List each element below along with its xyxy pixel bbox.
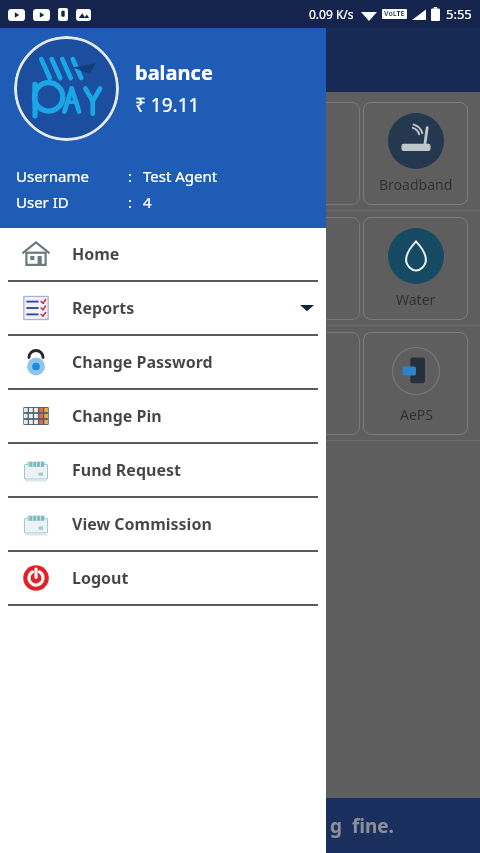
staticText: Logout [72, 567, 129, 589]
staticText: Reports [72, 297, 135, 319]
staticText: Change Password [72, 351, 213, 373]
staticText: 0.09 K/s [309, 6, 354, 22]
button[interactable]: Water [363, 217, 468, 320]
button[interactable]: Reports [0, 282, 326, 334]
staticText: Home [72, 243, 120, 265]
button[interactable]: Fund Request [0, 444, 326, 496]
button[interactable]: Change Pin [0, 390, 326, 442]
staticText: 5:55 [446, 5, 472, 23]
staticText: 4 [143, 192, 152, 212]
button[interactable]: AePS [363, 332, 468, 435]
staticText: Change Pin [72, 405, 162, 427]
staticText: balance [135, 59, 213, 86]
staticText: User ID [16, 192, 128, 212]
staticText: ₹ 19.11 [135, 92, 200, 118]
staticText: AePS [400, 405, 433, 424]
staticText: Water [396, 290, 436, 309]
staticText: g fine. [330, 813, 394, 839]
button[interactable]: Broadband [363, 102, 468, 205]
staticText: : [128, 192, 133, 212]
button[interactable]: View Commission [0, 498, 326, 550]
staticText: VoLTE [384, 9, 405, 19]
staticText: : [128, 166, 133, 186]
staticText: Fund Request [72, 459, 181, 481]
staticText: Username [16, 166, 128, 186]
button[interactable]: Logout [0, 552, 326, 604]
button[interactable]: Home [0, 228, 326, 280]
staticText: Test Agent [143, 166, 218, 186]
button[interactable]: Change Password [0, 336, 326, 388]
staticText: Broadband [379, 175, 453, 194]
staticText: View Commission [72, 513, 212, 535]
